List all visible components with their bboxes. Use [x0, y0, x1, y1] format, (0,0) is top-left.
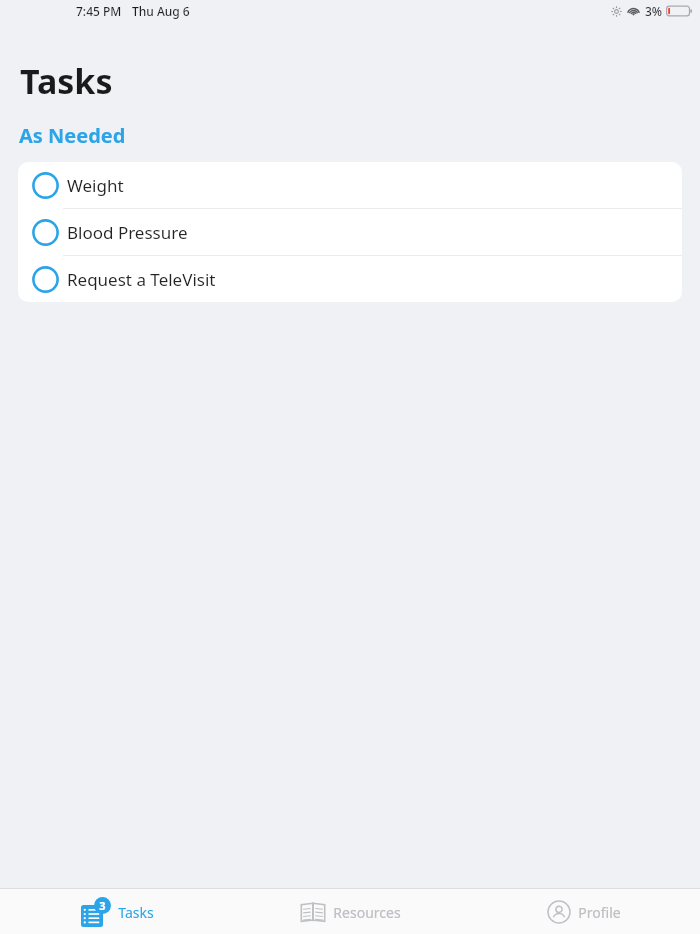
staticText: Resources — [333, 903, 401, 922]
staticText: Profile — [578, 903, 621, 922]
staticText: As Needed — [19, 122, 126, 149]
staticText: Tasks — [20, 58, 113, 104]
staticText: Thu Aug 6 — [132, 3, 190, 19]
staticText: Weight — [67, 174, 124, 197]
staticText: Request a TeleVisit — [67, 268, 216, 291]
staticText: 3% — [645, 3, 663, 19]
other: Resources — [300, 901, 326, 923]
staticText: Blood Pressure — [67, 221, 188, 244]
staticText: 3 — [99, 898, 106, 913]
button[interactable]: Blood Pressure — [18, 209, 682, 255]
button[interactable]: Resources — [294, 899, 407, 925]
button[interactable]: Weight — [18, 162, 682, 208]
button[interactable]: Tasks — [75, 895, 160, 929]
staticText: 7:45 PM — [76, 3, 122, 19]
staticText: Tasks — [118, 903, 154, 922]
other: Profile — [547, 900, 571, 924]
button[interactable]: Request a TeleVisit — [18, 256, 682, 302]
other: Tasks — [81, 897, 111, 927]
button[interactable]: Profile — [541, 898, 627, 926]
